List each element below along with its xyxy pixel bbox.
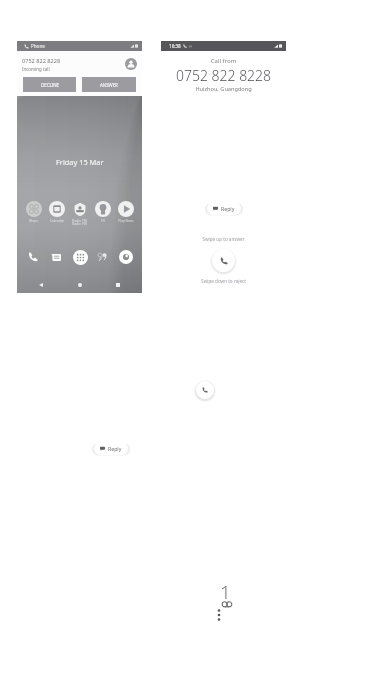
staticText: TV [101, 218, 105, 222]
staticText: 16:38 [169, 43, 181, 49]
button[interactable]: Play Store [115, 201, 136, 222]
staticText: 0752 822 8228 [22, 57, 61, 65]
button[interactable]: More options [216, 608, 222, 622]
staticText: Radio FM Radio FM [72, 218, 87, 226]
button[interactable]: TV [92, 201, 113, 222]
staticText: Calendar [50, 218, 64, 222]
button[interactable]: Camera [118, 249, 134, 265]
button[interactable]: All apps [72, 249, 88, 265]
button[interactable]: Calendar [46, 201, 67, 222]
button[interactable]: Recents [113, 280, 123, 290]
staticText: Maps [29, 218, 38, 222]
staticText: 1 [220, 579, 231, 605]
staticText: 0752 822 8228 [161, 66, 286, 85]
staticText: Call from [161, 57, 286, 65]
staticText: Swipe up to answer [161, 236, 286, 242]
button[interactable]: DECLINE [23, 77, 76, 92]
staticText: Reply [221, 205, 235, 212]
staticText: Phone [31, 43, 45, 49]
staticText: Huizhou, Guangdong [161, 85, 286, 93]
staticText: Friday 15 Mar [56, 157, 104, 167]
button[interactable]: Phone [25, 249, 41, 265]
staticText: ANSWER [100, 82, 118, 88]
button[interactable]: Reply [207, 202, 241, 215]
staticText: Play Store [118, 218, 134, 222]
staticText: Incoming call [22, 66, 50, 72]
button[interactable]: Home [75, 280, 85, 290]
button[interactable]: Radio FM Radio FM [69, 201, 90, 226]
staticText: DECLINE [41, 82, 59, 88]
staticText: Swipe down to reject [161, 278, 286, 284]
button[interactable]: ANSWER [82, 77, 136, 92]
button[interactable]: Maps [23, 201, 44, 222]
button[interactable]: Assistant [95, 249, 111, 265]
button[interactable]: Messages [48, 249, 64, 265]
button[interactable]: Answer call [212, 249, 235, 272]
button[interactable]: Reply [94, 442, 128, 455]
button[interactable]: Back [36, 280, 46, 290]
button[interactable]: Answer call [196, 381, 214, 399]
staticText: Reply [108, 445, 122, 452]
